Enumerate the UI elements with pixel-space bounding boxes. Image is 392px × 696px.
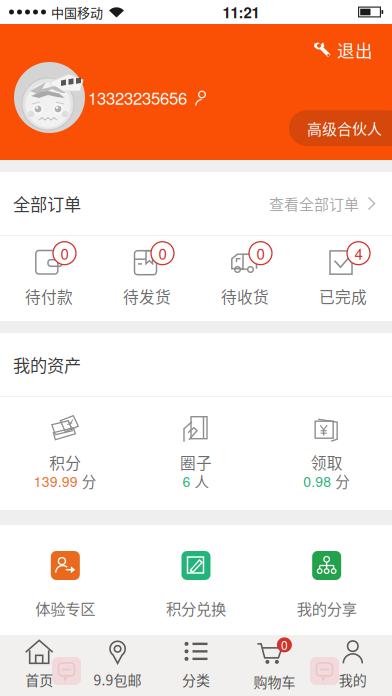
staticText: 领取 bbox=[311, 451, 343, 473]
staticText: 体验专区 bbox=[35, 597, 95, 619]
staticText: 积分 bbox=[49, 451, 81, 473]
staticText: 分类 bbox=[182, 669, 210, 690]
staticText: 9.9包邮 bbox=[94, 669, 142, 690]
staticText: 待付款 bbox=[25, 285, 73, 307]
staticText: 0.98 bbox=[303, 471, 331, 491]
button[interactable]: 4 bbox=[294, 236, 392, 307]
button[interactable]: 积分兑换 bbox=[131, 551, 261, 619]
button[interactable]: 圈子 bbox=[131, 415, 261, 491]
staticText: 我的 bbox=[339, 669, 367, 690]
staticText: 已完成 bbox=[319, 285, 367, 307]
button[interactable]: 0 bbox=[235, 631, 314, 696]
staticText: 0 bbox=[158, 242, 166, 264]
staticText: 中国移动 bbox=[51, 3, 103, 21]
staticText: 圈子 bbox=[180, 451, 212, 473]
staticText: 分 bbox=[335, 470, 350, 491]
staticText: 分 bbox=[82, 470, 97, 491]
staticText: 0 bbox=[256, 242, 264, 264]
staticText: 我的资产 bbox=[13, 352, 81, 377]
staticText: 我的分享 bbox=[297, 597, 357, 619]
button[interactable]: 9.9包邮 bbox=[78, 633, 157, 696]
button[interactable]: 高级合伙人 bbox=[289, 110, 392, 146]
staticText: 0 bbox=[60, 242, 68, 264]
button[interactable]: 0 bbox=[98, 236, 196, 307]
staticText: 139.99 bbox=[34, 471, 78, 491]
staticText: 退出 bbox=[337, 37, 373, 62]
staticText: 购物车 bbox=[253, 671, 295, 692]
button[interactable]: 退出 bbox=[313, 24, 392, 68]
staticText: 首页 bbox=[25, 669, 53, 690]
button[interactable]: 0 bbox=[196, 236, 294, 307]
staticText: 6 bbox=[182, 471, 190, 491]
button[interactable]: 0 bbox=[0, 236, 98, 307]
button[interactable]: 我的分享 bbox=[261, 551, 392, 619]
staticText: 11:21 bbox=[222, 1, 259, 23]
staticText: 查看全部订单 bbox=[269, 193, 359, 214]
staticText: 全部订单 bbox=[13, 191, 81, 216]
button[interactable]: 我的 bbox=[314, 633, 392, 696]
button[interactable]: 领取 bbox=[261, 415, 392, 491]
staticText: 积分兑换 bbox=[166, 597, 226, 619]
staticText: 13323235656 bbox=[88, 85, 187, 109]
button[interactable]: 首页 bbox=[0, 633, 78, 696]
staticText: 0 bbox=[281, 636, 288, 653]
button[interactable]: 体验专区 bbox=[0, 551, 131, 619]
staticText: 人 bbox=[194, 470, 209, 491]
staticText: 待发货 bbox=[123, 285, 171, 307]
staticText: 待收货 bbox=[221, 285, 269, 307]
staticText: 4 bbox=[354, 242, 362, 264]
button[interactable]: 分类 bbox=[157, 633, 235, 696]
button[interactable]: 积分 bbox=[0, 415, 131, 491]
staticText: 高级合伙人 bbox=[307, 117, 382, 139]
